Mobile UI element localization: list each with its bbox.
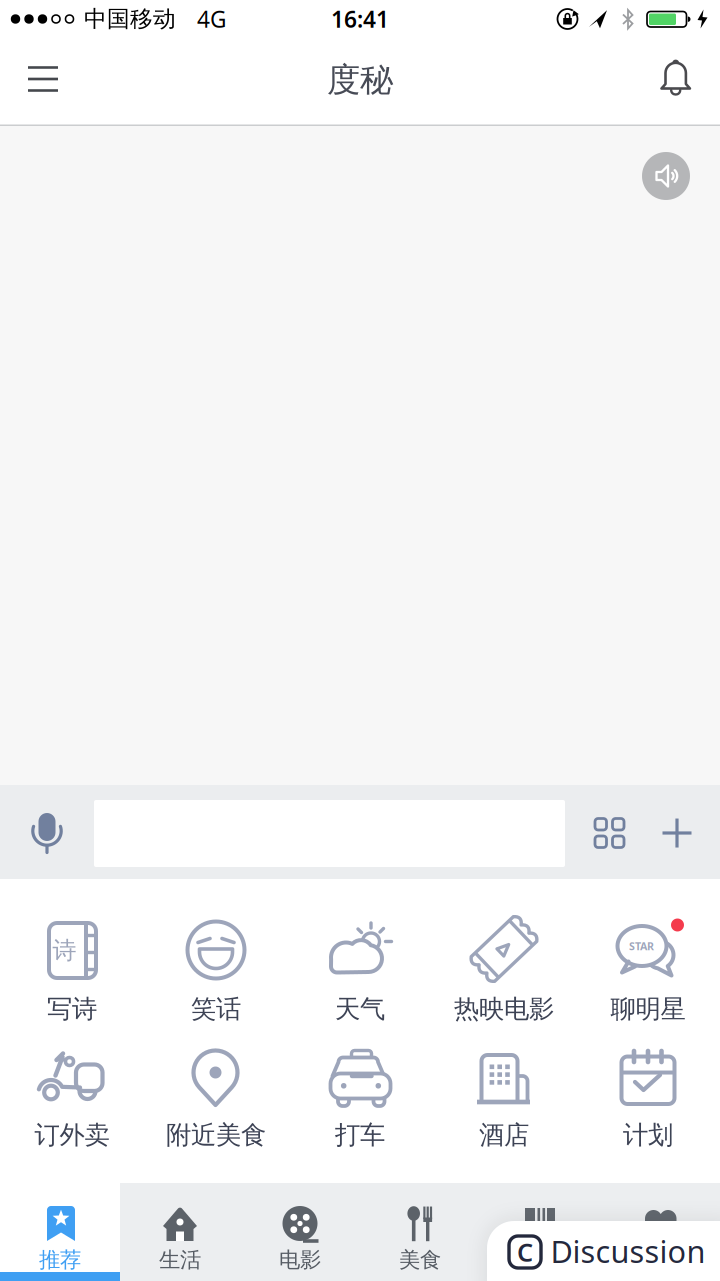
staticText: 中国移动 <box>84 5 176 33</box>
button[interactable]: 打车 <box>288 1024 432 1161</box>
button[interactable]: Notifications <box>644 46 708 110</box>
button[interactable]: 笑话 <box>144 896 288 1033</box>
button[interactable]: STAR <box>576 896 720 1033</box>
staticText: Discussion <box>550 1231 705 1271</box>
button[interactable]: Voice input <box>0 785 94 879</box>
staticText: 笑话 <box>191 993 241 1024</box>
staticText: 写诗 <box>47 993 97 1024</box>
staticText: 16:41 <box>331 4 389 34</box>
staticText: C <box>517 1235 533 1269</box>
staticText: 酒店 <box>479 1119 529 1150</box>
button[interactable]: 计划 <box>576 1024 720 1161</box>
button[interactable]: 推荐 <box>0 1183 120 1281</box>
button[interactable]: 订外卖 <box>0 1024 144 1161</box>
staticText: 计划 <box>623 1119 673 1150</box>
staticText: 打车 <box>335 1119 385 1150</box>
button[interactable]: 酒店 <box>432 1024 576 1161</box>
staticText: 附近美食 <box>166 1119 266 1150</box>
staticText: 天气 <box>335 993 385 1024</box>
button[interactable]: Menu <box>11 47 75 111</box>
button[interactable]: 生活 <box>120 1183 240 1281</box>
button[interactable]: 电影 <box>240 1183 360 1281</box>
button[interactable]: 优惠 <box>480 1183 600 1281</box>
button[interactable]: 美食 <box>360 1183 480 1281</box>
staticText: 推荐 <box>39 1247 81 1273</box>
button[interactable]: 我的 <box>600 1183 720 1281</box>
button[interactable]: Discussion <box>487 1221 720 1281</box>
button[interactable]: Mute voice <box>642 152 690 200</box>
button[interactable]: More <box>652 808 701 857</box>
button[interactable]: 诗 <box>0 896 144 1033</box>
staticText: 订外卖 <box>34 1119 109 1150</box>
button[interactable]: 附近美食 <box>144 1024 288 1161</box>
staticText: 生活 <box>159 1247 201 1273</box>
staticText: 美食 <box>399 1247 441 1273</box>
button[interactable]: 热映电影 <box>432 896 576 1033</box>
button[interactable]: 天气 <box>288 896 432 1033</box>
staticText: 电影 <box>279 1247 321 1273</box>
button[interactable]: Shortcuts <box>585 808 634 857</box>
staticText: 聊明星 <box>610 993 685 1024</box>
staticText: 4G <box>197 4 227 34</box>
staticText: STAR <box>629 939 654 953</box>
staticText: 度秘 <box>327 59 393 100</box>
staticText: 诗 <box>52 936 76 965</box>
staticText: 热映电影 <box>454 993 554 1024</box>
